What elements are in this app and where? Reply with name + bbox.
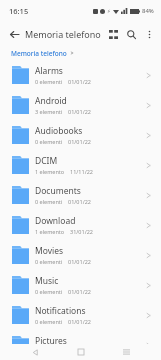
staticText: Alarms bbox=[35, 65, 63, 77]
staticText: 01/01/22 bbox=[68, 138, 91, 145]
staticText: 01/01/22 bbox=[68, 258, 91, 265]
other: Open Notifications bbox=[139, 306, 157, 324]
button[interactable]: Music bbox=[0, 270, 161, 300]
staticText: Android bbox=[35, 95, 67, 107]
staticText: ⚡ bbox=[107, 8, 111, 14]
staticText: Notifications bbox=[35, 305, 86, 317]
staticText: 0 elementi bbox=[35, 138, 63, 145]
other: Open Audiobooks bbox=[139, 126, 157, 144]
staticText: Memoria telefono bbox=[25, 28, 101, 40]
button[interactable]: Notifications bbox=[0, 300, 161, 330]
other: Open Alarms bbox=[139, 66, 157, 84]
staticText: 0 elementi bbox=[35, 318, 63, 325]
button[interactable]: DCIM bbox=[0, 150, 161, 180]
staticText: DCIM bbox=[35, 155, 58, 167]
button[interactable]: Recent apps bbox=[116, 344, 136, 360]
staticText: 01/01/22 bbox=[68, 198, 91, 205]
button[interactable]: Audiobooks bbox=[0, 120, 161, 150]
button[interactable]: Grid view bbox=[104, 25, 122, 43]
staticText: Music bbox=[35, 275, 59, 287]
button[interactable]: Search bbox=[122, 25, 140, 43]
staticText: 0 elementi bbox=[35, 78, 63, 85]
staticText: 31/01/22 bbox=[70, 228, 93, 235]
staticText: 01/01/22 bbox=[68, 318, 91, 325]
button[interactable]: Memoria telefono bbox=[11, 49, 67, 58]
staticText: 0 elementi bbox=[35, 258, 63, 265]
staticText: 0 elementi bbox=[35, 288, 63, 295]
staticText: 11/11/22 bbox=[70, 168, 93, 175]
button[interactable]: Back bbox=[25, 344, 45, 360]
staticText: 1 elemento bbox=[35, 228, 65, 235]
staticText: Documents bbox=[35, 185, 81, 197]
staticText: Download bbox=[35, 215, 76, 227]
button[interactable]: Back bbox=[5, 25, 23, 43]
button[interactable]: Alarms bbox=[0, 60, 161, 90]
staticText: Memoria telefono bbox=[11, 49, 67, 58]
staticText: Pictures bbox=[35, 335, 67, 347]
button[interactable]: Documents bbox=[0, 180, 161, 210]
button[interactable]: Home bbox=[71, 344, 91, 360]
other: Open DCIM bbox=[139, 156, 157, 174]
staticText: 01/01/22 bbox=[68, 78, 91, 85]
staticText: Movies bbox=[35, 245, 64, 257]
button[interactable]: Download bbox=[0, 210, 161, 240]
button[interactable]: Android bbox=[0, 90, 161, 120]
staticText: 01/01/22 bbox=[68, 348, 91, 355]
staticText: 1 elemento bbox=[35, 168, 65, 175]
staticText: 84% bbox=[142, 7, 154, 15]
other: Open Download bbox=[139, 216, 157, 234]
staticText: 0 elementi bbox=[35, 198, 63, 205]
staticText: 01/01/22 bbox=[68, 288, 91, 295]
other: Open Android bbox=[139, 96, 157, 114]
staticText: 3 elementi bbox=[35, 108, 63, 115]
button[interactable]: Pictures bbox=[0, 330, 161, 360]
staticText: 0 elementi bbox=[35, 348, 63, 355]
staticText: 01/01/22 bbox=[68, 108, 91, 115]
other: Open Movies bbox=[139, 246, 157, 264]
staticText: 16:15 bbox=[9, 6, 29, 16]
other: Open Documents bbox=[139, 186, 157, 204]
button[interactable]: Movies bbox=[0, 240, 161, 270]
staticText: Audiobooks bbox=[35, 125, 83, 137]
other: Open Music bbox=[139, 276, 157, 294]
button[interactable]: More options bbox=[140, 25, 158, 43]
